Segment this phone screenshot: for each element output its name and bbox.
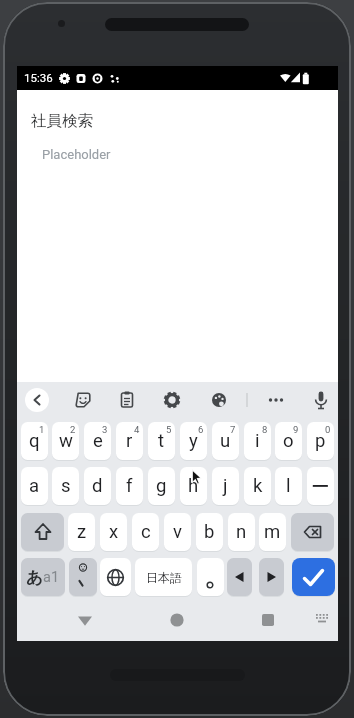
button[interactable]: r (116, 422, 143, 460)
staticText: g (156, 475, 167, 497)
button[interactable] (292, 558, 335, 596)
button[interactable]: u (212, 422, 239, 460)
staticText: 0 (325, 424, 331, 435)
button[interactable]: p (307, 422, 334, 460)
button[interactable] (291, 513, 334, 551)
staticText: 1 (39, 424, 45, 435)
staticText: j (223, 475, 228, 497)
button[interactable]: c (132, 513, 159, 551)
button[interactable] (205, 386, 233, 414)
button[interactable] (259, 558, 284, 596)
staticText: r (126, 430, 133, 452)
button[interactable]: t (148, 422, 175, 460)
staticText: v (173, 521, 182, 543)
button[interactable]: f (116, 467, 143, 505)
button[interactable]: Placeholder (42, 147, 111, 162)
button[interactable] (23, 386, 51, 414)
staticText: z (77, 521, 87, 543)
button[interactable] (254, 606, 282, 634)
staticText: 5 (166, 424, 172, 435)
staticText: s (61, 475, 71, 497)
button[interactable] (100, 558, 131, 596)
button[interactable]: z (68, 513, 95, 551)
staticText: 9 (293, 424, 299, 435)
staticText: c (141, 521, 151, 543)
button[interactable]: y (180, 422, 207, 460)
button[interactable]: s (52, 467, 79, 505)
button[interactable]: w (52, 422, 79, 460)
staticText: 2 (70, 424, 76, 435)
staticText: u (220, 430, 231, 452)
button[interactable]: d (84, 467, 111, 505)
staticText: 6 (198, 424, 204, 435)
button[interactable]: x (100, 513, 127, 551)
button[interactable]: h (180, 467, 207, 505)
staticText: l (286, 475, 291, 497)
button[interactable]: ー (307, 467, 334, 505)
button[interactable]: g (148, 467, 175, 505)
button[interactable]: a (21, 467, 48, 505)
button[interactable] (311, 609, 333, 629)
staticText: あ (26, 567, 43, 588)
staticText: m (264, 521, 281, 543)
staticText: 社員検索 (31, 111, 93, 131)
staticText: o (283, 430, 294, 452)
staticText: 7 (230, 424, 236, 435)
staticText: t (158, 430, 165, 452)
button[interactable]: v (164, 513, 191, 551)
staticText: n (236, 521, 247, 543)
staticText: d (92, 475, 103, 497)
button[interactable] (262, 386, 290, 414)
staticText: k (253, 475, 263, 497)
button[interactable]: l (275, 467, 302, 505)
button[interactable] (71, 606, 99, 634)
staticText: ー (311, 475, 330, 498)
staticText: a (29, 475, 40, 497)
staticText: f (126, 475, 133, 497)
button[interactable] (21, 513, 64, 551)
button[interactable]: q (21, 422, 48, 460)
staticText: 日本語 (146, 570, 182, 585)
button[interactable]: m (259, 513, 286, 551)
staticText: p (315, 430, 326, 452)
button[interactable]: e (84, 422, 111, 460)
staticText: 3 (102, 424, 108, 435)
button[interactable] (69, 386, 97, 414)
button[interactable] (227, 558, 252, 596)
staticText: 15:36 (24, 71, 53, 84)
staticText: w (59, 430, 73, 452)
staticText: Placeholder (42, 147, 111, 162)
button[interactable] (163, 606, 191, 634)
staticText: h (188, 475, 199, 497)
button[interactable]: i (244, 422, 271, 460)
staticText: y (189, 430, 198, 452)
button[interactable] (197, 558, 224, 596)
staticText: q (29, 430, 40, 452)
staticText: a1 (43, 569, 60, 586)
button[interactable] (158, 386, 186, 414)
button[interactable]: j (212, 467, 239, 505)
staticText: 8 (262, 424, 268, 435)
button[interactable]: n (228, 513, 255, 551)
button[interactable]: b (196, 513, 223, 551)
button[interactable] (113, 386, 141, 414)
staticText: b (204, 521, 215, 543)
button[interactable]: 日本語 (135, 558, 192, 596)
staticText: 4 (134, 424, 140, 435)
staticText: x (109, 521, 119, 543)
button[interactable]: k (244, 467, 271, 505)
button[interactable] (69, 558, 97, 596)
staticText: e (93, 430, 103, 452)
button[interactable]: o (275, 422, 302, 460)
button[interactable]: あ (21, 558, 65, 596)
staticText: i (255, 430, 260, 452)
button[interactable] (307, 386, 335, 414)
